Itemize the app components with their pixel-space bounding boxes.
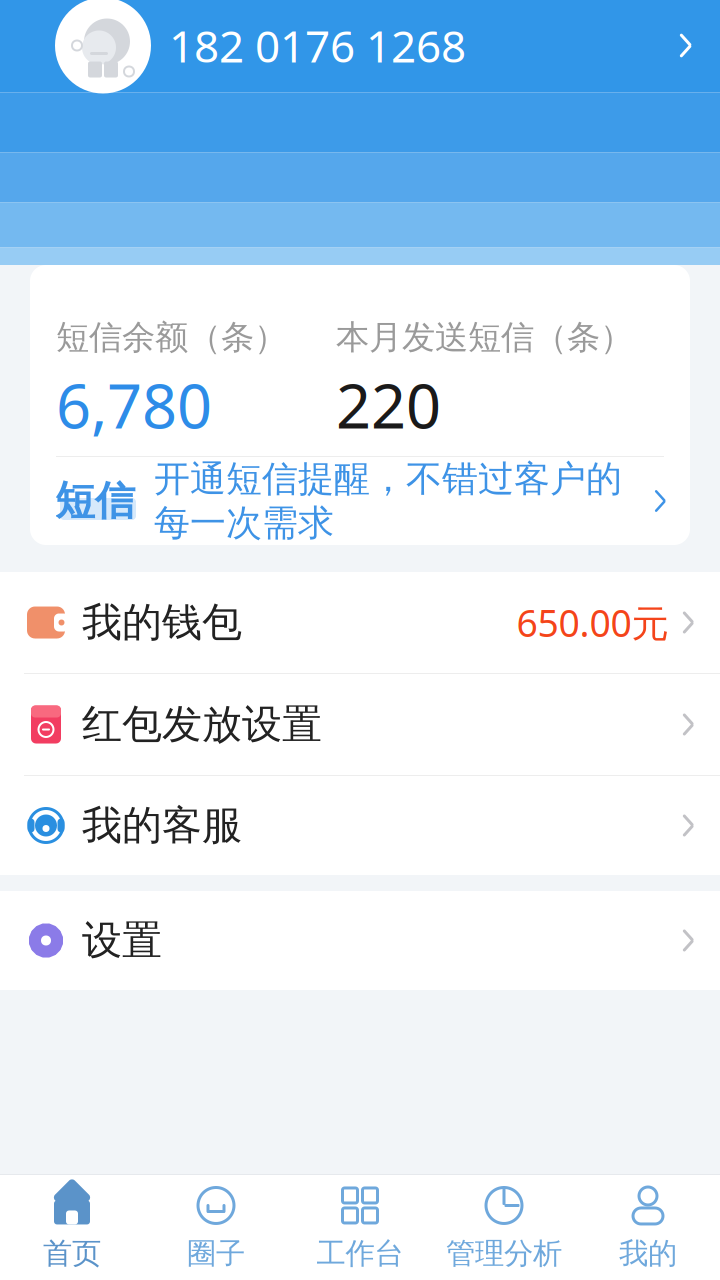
button[interactable]: 182 0176 1268: [0, 0, 720, 100]
button[interactable]: 工作台: [288, 1177, 432, 1277]
staticText: 首页: [43, 1235, 101, 1271]
staticText: 工作台: [316, 1235, 403, 1271]
button[interactable]: 管理分析: [432, 1177, 576, 1277]
staticText: 短信余额（条）: [56, 317, 287, 358]
staticText: 短信: [55, 476, 135, 525]
button[interactable]: 红包发放设置: [0, 674, 720, 776]
staticText: 650.00元: [516, 598, 668, 647]
button[interactable]: 我的钱包: [0, 572, 720, 674]
staticText: 开通短信提醒，不错过客户的每一次需求: [154, 457, 622, 545]
button[interactable]: 我的客服: [0, 776, 720, 875]
button[interactable]: 首页: [0, 1177, 144, 1277]
staticText: 6,780: [56, 364, 212, 445]
button[interactable]: 圈子: [144, 1177, 288, 1277]
staticText: 我的钱包: [82, 598, 242, 647]
staticText: 220: [336, 364, 441, 445]
staticText: 管理分析: [446, 1235, 562, 1271]
button[interactable]: 短信: [30, 457, 690, 545]
button[interactable]: 我的: [576, 1177, 720, 1277]
staticText: 182 0176 1268: [169, 16, 466, 75]
button[interactable]: 设置: [0, 891, 720, 990]
staticText: 本月发送短信（条）: [336, 317, 633, 358]
staticText: 红包发放设置: [82, 700, 322, 749]
staticText: 设置: [82, 916, 162, 965]
staticText: 圈子: [187, 1235, 245, 1271]
staticText: 我的: [619, 1235, 677, 1271]
staticText: 我的客服: [82, 801, 242, 850]
